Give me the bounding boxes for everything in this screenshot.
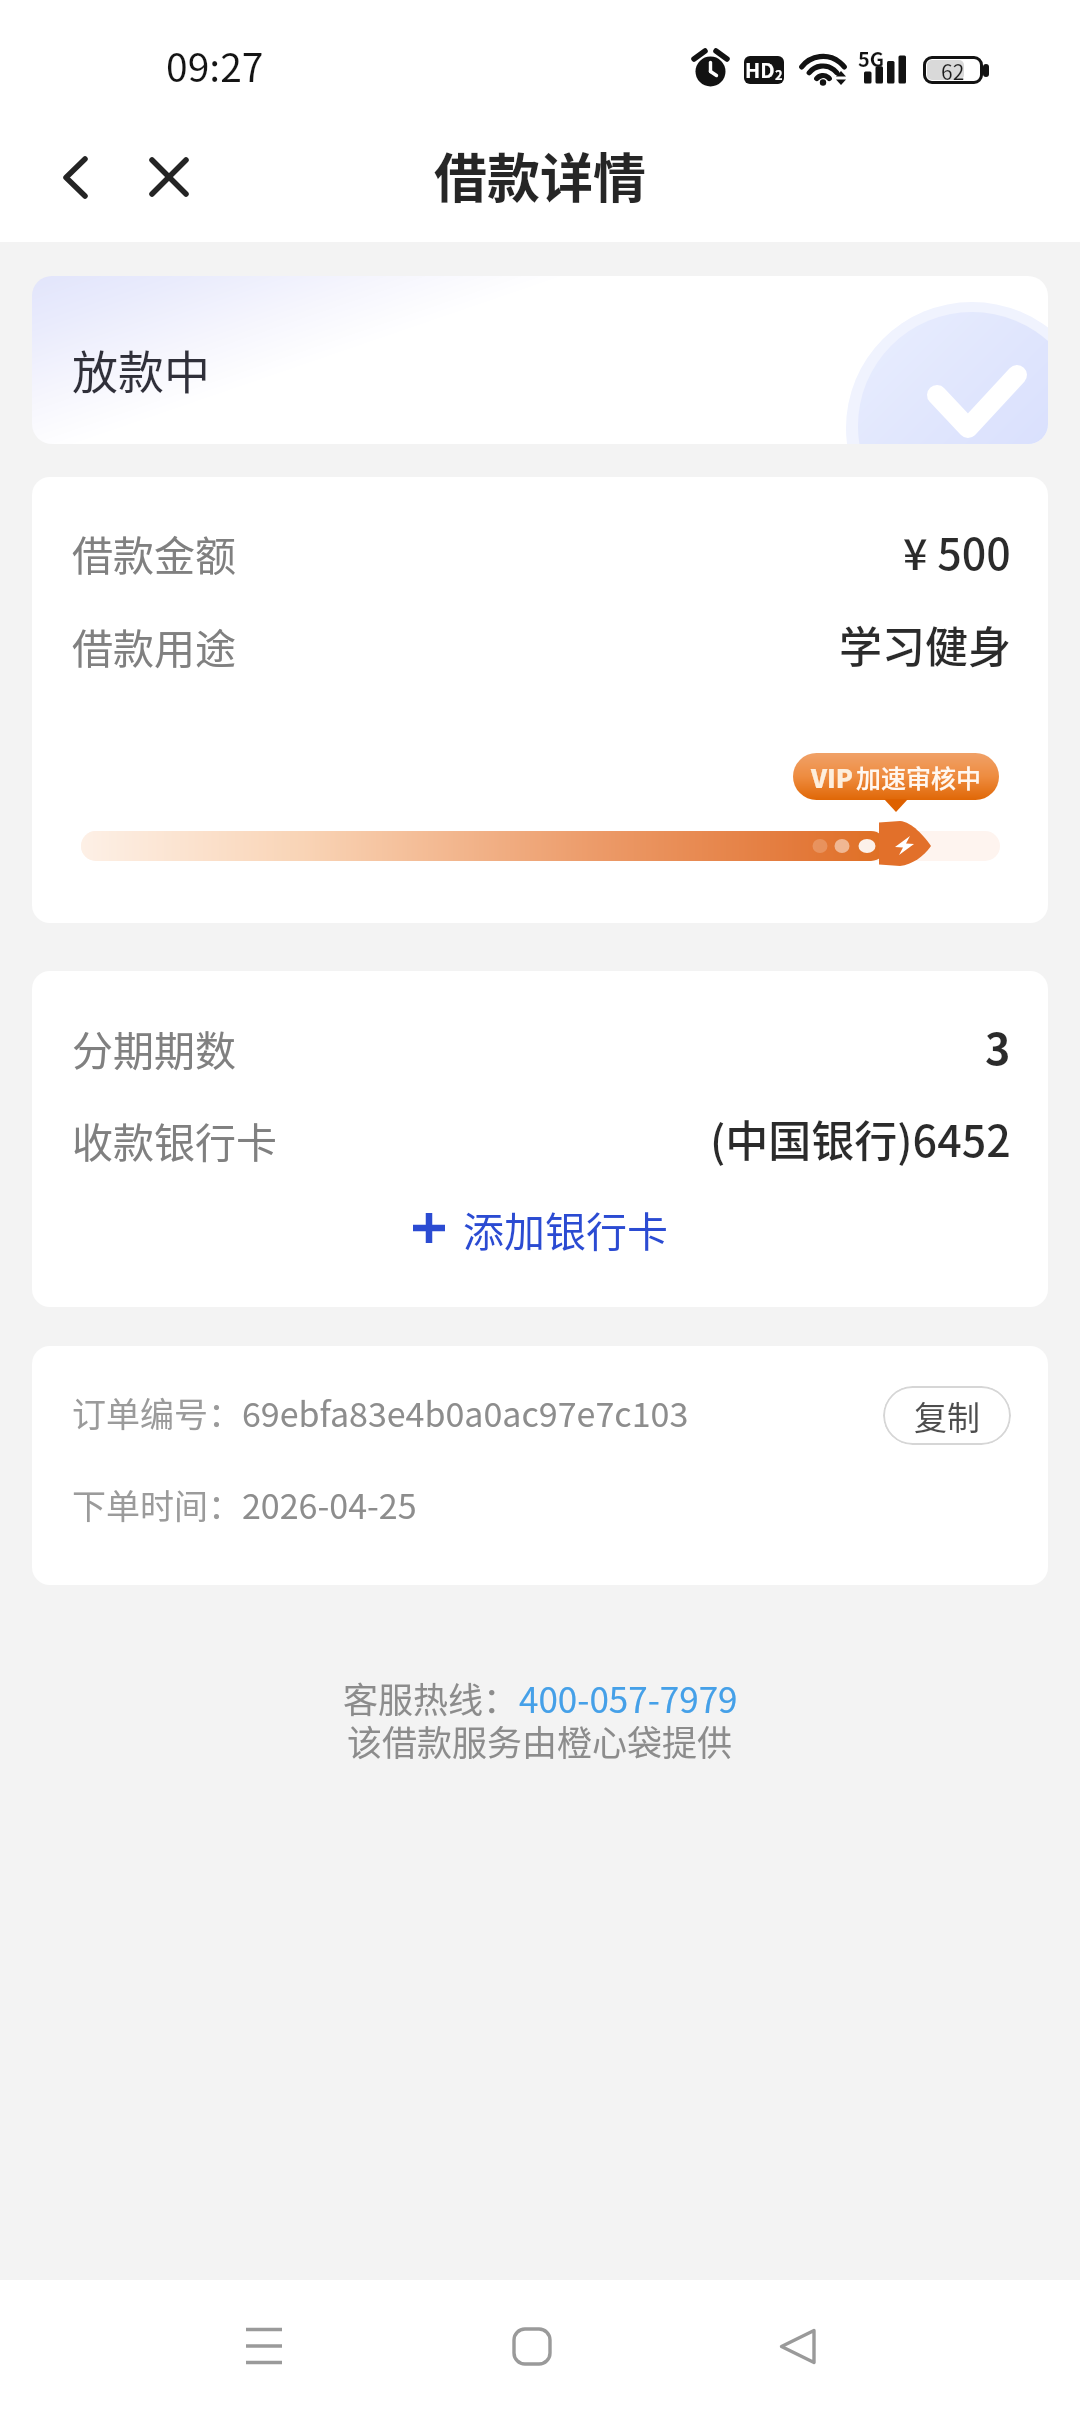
staticText: ¥ 500 [903,520,1011,582]
staticText: 客服热线： [343,1672,519,1723]
staticText: 借款金额 [72,523,236,582]
staticText: 69ebfa83e4b0a0ac97e7c103 [242,1388,689,1437]
staticText: 分期期数 [72,1018,236,1077]
staticText: 加速审核中 [856,759,982,795]
button[interactable]: Back [747,2313,847,2379]
staticText: 5G [858,44,885,73]
staticText: 借款用途 [72,616,236,675]
staticText: 借款详情 [434,137,646,214]
staticText: VIP [811,759,854,795]
button[interactable]: 复制 [883,1386,1011,1445]
staticText: 下单时间： [72,1480,242,1529]
staticText: 复制 [914,1392,980,1440]
staticText: 收款银行卡 [72,1110,277,1169]
button[interactable]: 400-057-7979 [519,1672,738,1723]
staticText: 2 [775,65,783,84]
button[interactable]: Home [482,2313,582,2379]
button[interactable]: Close [134,142,204,212]
button[interactable]: VIP [793,753,999,800]
staticText: 09:27 [166,37,264,93]
staticText: 3 [985,1015,1011,1077]
staticText: (中国银行)6452 [710,1107,1011,1169]
button[interactable]: Recent apps [214,2313,314,2379]
staticText: HD [745,56,775,83]
staticText: 该借款服务由橙心袋提供 [347,1715,733,1766]
staticText: 放款中 [72,336,210,403]
button[interactable]: 添加银行卡 [282,1189,798,1267]
staticText: 62 [941,56,965,84]
staticText: 2026-04-25 [242,1480,417,1529]
staticText: 添加银行卡 [463,1199,668,1258]
button[interactable]: Back [40,142,110,212]
staticText: 学习健身 [839,613,1011,675]
staticText: 订单编号： [72,1388,242,1437]
